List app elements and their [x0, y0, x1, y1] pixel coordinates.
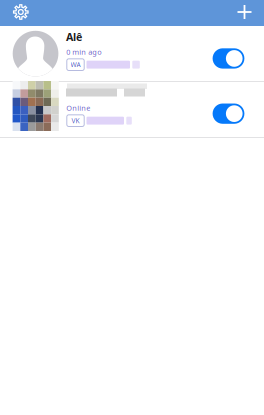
- staticText: 0 min ago: [66, 47, 101, 57]
- staticText: VK: [71, 116, 79, 125]
- staticText: Alê: [66, 30, 82, 44]
- button[interactable]: Online: [0, 82, 264, 137]
- button[interactable]: Add: [231, 0, 257, 25]
- button[interactable]: Alê: [0, 26, 264, 81]
- staticText: Online: [66, 103, 90, 113]
- staticText: WA: [70, 60, 80, 69]
- button[interactable]: Settings: [8, 0, 34, 25]
